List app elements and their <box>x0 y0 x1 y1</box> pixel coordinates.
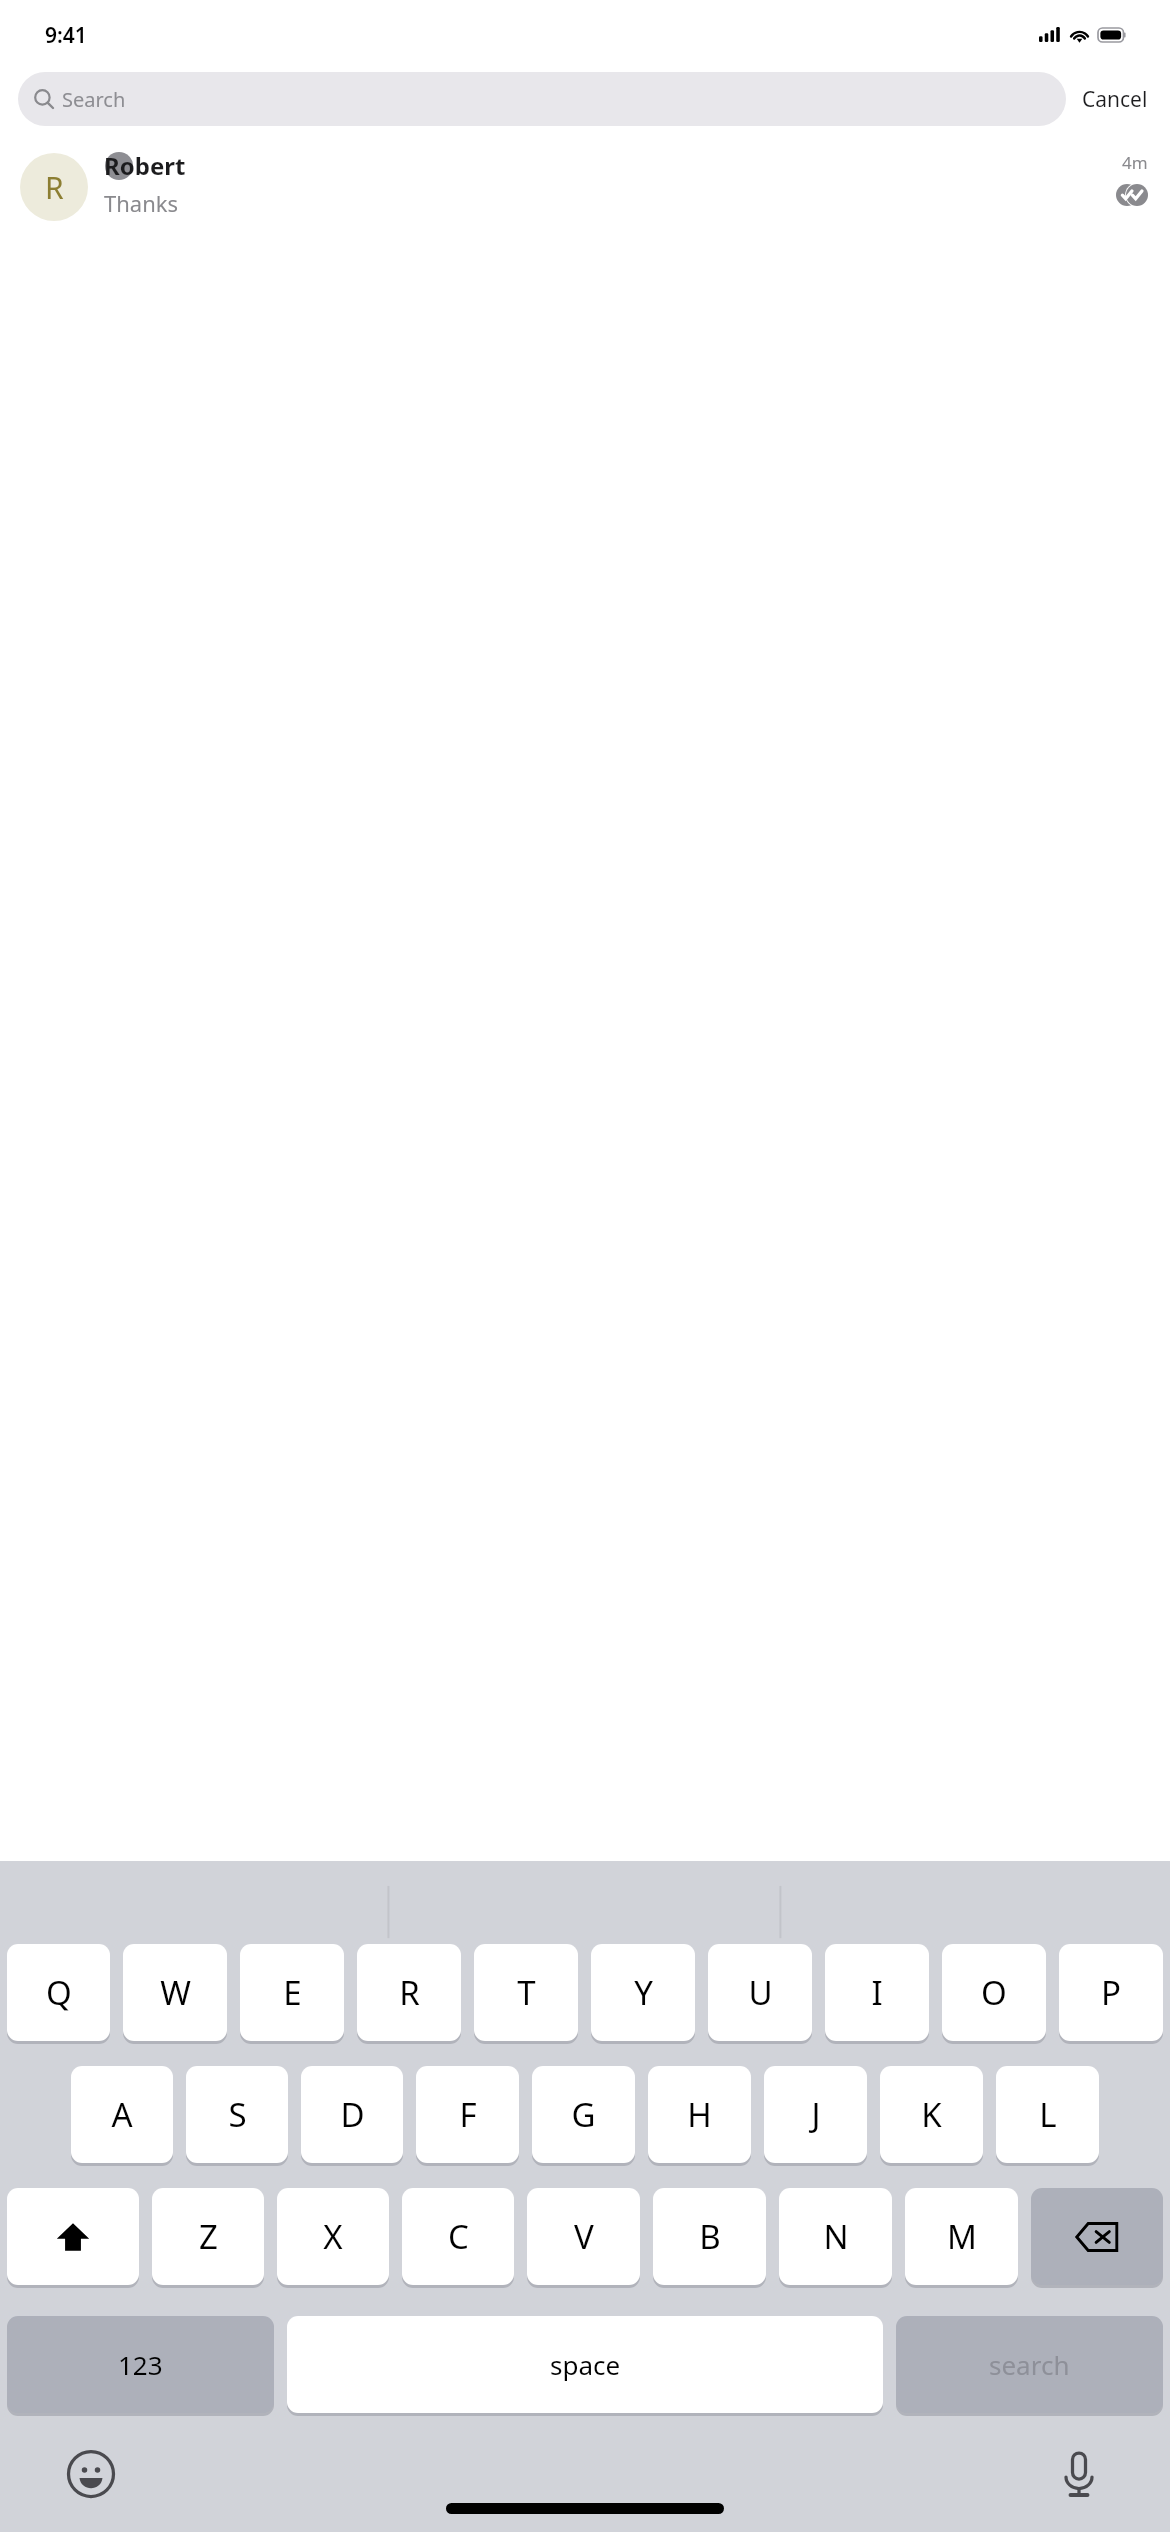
staticText: space <box>550 2347 621 2382</box>
staticText: Cancel <box>1082 85 1148 114</box>
staticText: E <box>283 1970 302 2015</box>
staticText: N <box>823 2214 849 2259</box>
staticText: O <box>981 1970 1007 2015</box>
button[interactable]: D <box>301 2066 403 2163</box>
button[interactable]: S <box>186 2066 288 2163</box>
staticText: U <box>748 1970 773 2015</box>
button[interactable]: 123 <box>7 2316 274 2413</box>
staticText: L <box>1039 2092 1057 2137</box>
button[interactable]: O <box>942 1944 1046 2041</box>
button[interactable]: R <box>357 1944 461 2041</box>
staticText: M <box>947 2214 977 2259</box>
staticText: T <box>517 1970 536 2015</box>
staticText: I <box>871 1970 883 2015</box>
staticText: S <box>228 2092 247 2137</box>
staticText: D <box>340 2092 365 2137</box>
button[interactable]: K <box>880 2066 983 2163</box>
staticText: 123 <box>118 2347 163 2382</box>
staticText: Q <box>46 1970 72 2015</box>
staticText: C <box>448 2214 469 2259</box>
button[interactable]: Cancel <box>1066 77 1152 122</box>
staticText: R <box>45 167 64 208</box>
button[interactable]: F <box>416 2066 519 2163</box>
other: Shift <box>7 2188 139 2288</box>
staticText: Robert <box>104 149 186 182</box>
staticText: V <box>574 2214 594 2259</box>
button[interactable]: I <box>825 1944 929 2041</box>
staticText: 9:41 <box>45 21 87 50</box>
staticText: G <box>571 2092 596 2137</box>
staticText: Z <box>199 2214 218 2259</box>
button[interactable]: space <box>287 2316 883 2413</box>
staticText: P <box>1101 1970 1121 2015</box>
staticText: J <box>811 2092 821 2137</box>
button[interactable]: B <box>653 2188 766 2285</box>
button[interactable]: Z <box>152 2188 264 2285</box>
staticText: Search <box>62 86 126 113</box>
staticText: Thanks <box>104 188 179 218</box>
other: Backspace <box>1031 2188 1163 2288</box>
button[interactable]: V <box>527 2188 640 2285</box>
button[interactable]: L <box>996 2066 1099 2163</box>
staticText: Y <box>634 1970 653 2015</box>
button[interactable]: T <box>474 1944 578 2041</box>
button[interactable]: C <box>402 2188 514 2285</box>
staticText: F <box>459 2092 477 2137</box>
staticText: B <box>699 2214 721 2259</box>
button[interactable]: P <box>1059 1944 1163 2041</box>
button[interactable]: Emoji <box>64 2447 118 2501</box>
staticText: X <box>323 2214 343 2259</box>
button[interactable]: U <box>708 1944 812 2041</box>
button[interactable]: search <box>896 2316 1163 2413</box>
button[interactable]: R <box>0 135 1170 231</box>
staticText: 4m <box>1122 151 1148 174</box>
staticText: search <box>989 2347 1070 2382</box>
staticText: H <box>687 2092 712 2137</box>
button[interactable]: A <box>71 2066 173 2163</box>
button[interactable]: Y <box>591 1944 695 2041</box>
button[interactable]: H <box>648 2066 751 2163</box>
button[interactable]: Q <box>7 1944 110 2041</box>
staticText: A <box>111 2092 133 2137</box>
staticText: R <box>399 1970 420 2015</box>
button[interactable]: N <box>779 2188 892 2285</box>
button[interactable]: Search <box>18 72 1066 126</box>
button[interactable]: M <box>905 2188 1018 2285</box>
button[interactable]: W <box>123 1944 227 2041</box>
button[interactable]: E <box>240 1944 344 2041</box>
button[interactable]: J <box>764 2066 867 2163</box>
staticText: W <box>160 1970 191 2015</box>
button[interactable] <box>7 2188 139 2285</box>
button[interactable]: X <box>277 2188 389 2285</box>
button[interactable]: G <box>532 2066 635 2163</box>
staticText: K <box>921 2092 942 2137</box>
button[interactable]: Dictation <box>1052 2447 1106 2501</box>
button[interactable] <box>1031 2188 1163 2285</box>
